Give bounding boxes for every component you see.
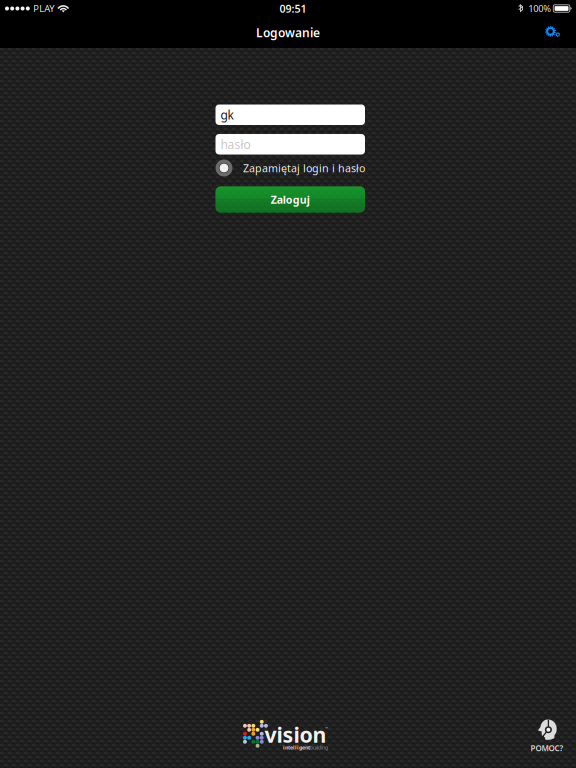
button[interactable]: POMOC? xyxy=(525,719,569,753)
staticText: gk xyxy=(220,107,233,123)
staticText: 09:51 xyxy=(279,1,306,16)
staticText: Zaloguj xyxy=(271,192,310,207)
staticText: PLAY xyxy=(33,2,54,15)
staticText: hasło xyxy=(220,136,250,152)
button[interactable]: Zaloguj xyxy=(215,186,365,212)
staticText: vision xyxy=(264,720,326,749)
staticText: ™ xyxy=(325,726,328,731)
staticText: intelligent xyxy=(283,744,310,751)
staticText: Zapamiętaj login i hasło xyxy=(243,161,365,175)
staticText: building xyxy=(310,744,328,751)
button[interactable]: Ustawienia xyxy=(535,20,576,44)
staticText: POMOC? xyxy=(530,743,563,753)
staticText: Logowanie xyxy=(256,24,320,40)
staticText: 100% xyxy=(528,2,551,15)
button[interactable]: Zapamiętaj login i hasło xyxy=(215,159,370,176)
